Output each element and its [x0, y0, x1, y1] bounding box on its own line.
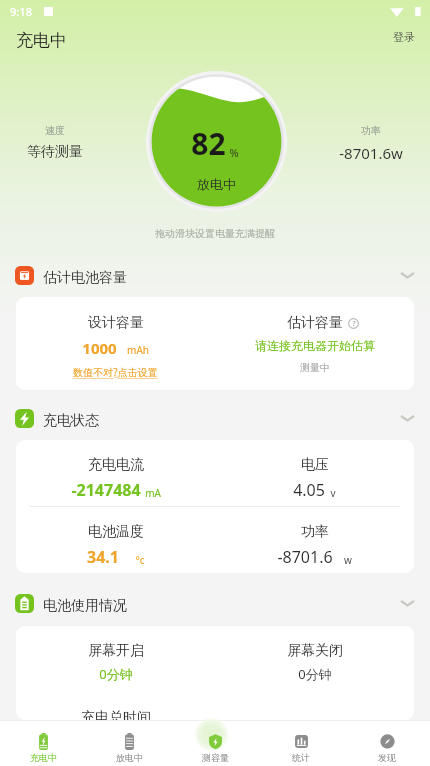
- staticText: 拖动滑块设置电量充满提醒: [155, 227, 275, 240]
- staticText: 数值不对?点击设置: [73, 365, 158, 379]
- staticText: 速度: [45, 124, 65, 137]
- staticText: 充电中: [16, 30, 67, 51]
- staticText: 请连接充电器开始估算: [255, 338, 375, 353]
- button[interactable]: 电压: [215, 440, 414, 506]
- staticText: 电池使用情况: [43, 597, 127, 615]
- staticText: 估计电池容量: [43, 269, 127, 287]
- staticText: 82: [191, 123, 226, 164]
- button[interactable]: 放电中: [86, 720, 172, 766]
- staticText: 测容量: [202, 752, 229, 763]
- staticText: 估计容量: [287, 314, 343, 332]
- staticText: 放电中: [197, 176, 236, 192]
- staticText: -2147484: [71, 479, 141, 501]
- staticText: w: [344, 553, 352, 567]
- staticText: 功率: [361, 124, 381, 137]
- staticText: 屏幕开启: [88, 642, 144, 660]
- staticText: mAh: [127, 343, 149, 357]
- staticText: 充电中: [30, 752, 57, 763]
- staticText: °c: [135, 553, 145, 567]
- staticText: -8701.6w: [339, 143, 403, 163]
- button[interactable]: 登录: [379, 22, 430, 52]
- staticText: 设计容量: [88, 314, 144, 332]
- button[interactable]: 统计: [258, 720, 344, 766]
- staticText: 充电总时间: [81, 709, 151, 720]
- button[interactable]: 屏幕开启: [16, 626, 215, 693]
- staticText: 测量中: [300, 361, 330, 374]
- staticText: 4.05: [293, 479, 325, 501]
- button[interactable]: 发现: [344, 720, 430, 766]
- staticText: 0分钟: [298, 665, 332, 683]
- button[interactable]: 电池温度: [16, 507, 215, 573]
- staticText: ?: [352, 319, 356, 329]
- staticText: mA: [145, 486, 161, 500]
- button[interactable]: 充电状态: [0, 405, 430, 431]
- staticText: %: [229, 145, 239, 160]
- button[interactable]: 充电总时间: [16, 693, 215, 720]
- staticText: 电压: [301, 456, 329, 474]
- button[interactable]: 屏幕关闭: [215, 626, 414, 693]
- staticText: 统计: [292, 752, 310, 763]
- staticText: 发现: [378, 752, 396, 763]
- button[interactable]: 测容量: [172, 720, 258, 766]
- button[interactable]: 充电电流: [16, 440, 215, 506]
- staticText: 0分钟: [99, 665, 133, 683]
- staticText: 屏幕关闭: [287, 642, 343, 660]
- button[interactable]: 电池使用情况: [0, 590, 430, 616]
- button[interactable]: 充电中: [0, 720, 86, 766]
- staticText: 1000: [82, 338, 117, 358]
- staticText: 9:18: [10, 4, 32, 19]
- button[interactable]: 估计电池容量: [0, 262, 430, 288]
- staticText: 功率: [301, 523, 329, 541]
- button[interactable]: 估计容量: [215, 297, 414, 390]
- staticText: 34.1: [87, 546, 119, 568]
- button[interactable]: 82: [146, 71, 287, 212]
- button[interactable]: 设计容量: [16, 297, 215, 390]
- staticText: 充电状态: [43, 412, 99, 430]
- staticText: -8701.6: [277, 546, 333, 568]
- staticText: 充电电流: [88, 456, 144, 474]
- staticText: v: [330, 486, 336, 500]
- staticText: 电池温度: [88, 523, 144, 541]
- staticText: 等待测量: [27, 143, 83, 161]
- staticText: 登录: [393, 30, 415, 44]
- button[interactable]: 功率: [215, 507, 414, 573]
- staticText: 放电中: [116, 752, 143, 763]
